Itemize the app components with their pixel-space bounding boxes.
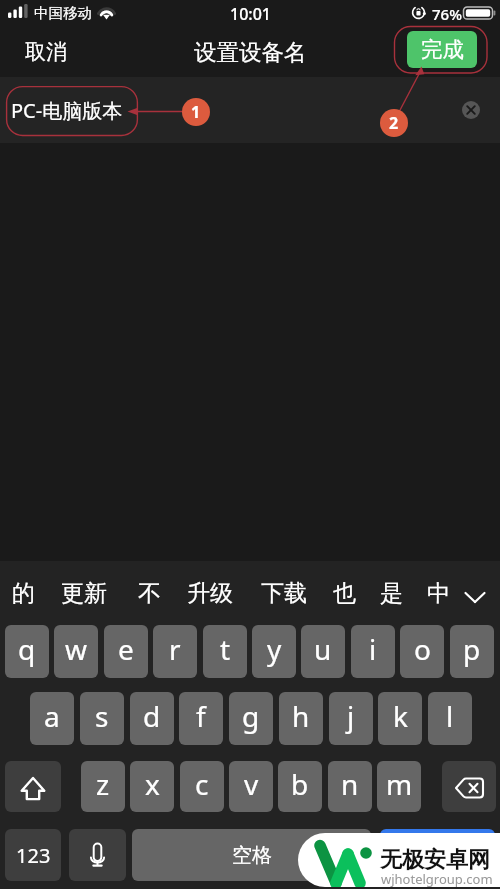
staticText: m (386, 765, 413, 803)
staticText: 空格 (232, 843, 272, 868)
button[interactable]: d (130, 692, 174, 745)
button[interactable]: 空格 (132, 829, 371, 881)
staticText: a (44, 697, 60, 735)
button[interactable]: f (179, 692, 223, 745)
button[interactable]: i (351, 625, 395, 678)
button[interactable]: 不 (138, 579, 161, 608)
button[interactable]: 升级 (187, 579, 233, 608)
button[interactable]: n (328, 761, 372, 812)
button[interactable]: 的 (12, 579, 35, 608)
button[interactable]: o (400, 625, 444, 678)
staticText: u (314, 630, 332, 668)
button[interactable]: Backspace (442, 761, 496, 812)
staticText: h (292, 697, 310, 735)
button[interactable]: x (130, 761, 174, 812)
button[interactable]: 更新 (61, 579, 107, 608)
button[interactable]: 123 (5, 829, 61, 881)
button[interactable]: z (81, 761, 125, 812)
staticText: i (369, 630, 377, 668)
staticText: PC-电脑版本 (11, 97, 123, 124)
staticText: 取消 (25, 39, 67, 65)
staticText: 更新 (61, 579, 107, 608)
staticText: y (267, 630, 282, 668)
button[interactable]: Shift (5, 761, 61, 812)
button[interactable]: k (378, 692, 422, 745)
button[interactable]: 取消 (25, 39, 67, 65)
staticText: 的 (12, 579, 35, 608)
button[interactable]: h (279, 692, 323, 745)
staticText: 2 (389, 112, 399, 134)
staticText: 中 (427, 579, 450, 608)
staticText: r (169, 630, 181, 668)
button[interactable]: v (229, 761, 273, 812)
button[interactable]: r (153, 625, 197, 678)
staticText: 完成 (421, 36, 464, 63)
staticText: c (195, 765, 209, 803)
staticText: d (143, 697, 161, 735)
staticText: 是 (380, 579, 403, 608)
staticText: g (242, 697, 260, 735)
staticText: 76% (432, 4, 462, 24)
button[interactable]: 中 (427, 579, 450, 608)
staticText: j (347, 697, 355, 735)
button[interactable]: q (5, 625, 49, 678)
staticText: n (341, 765, 359, 803)
staticText: 下载 (261, 579, 307, 608)
button[interactable]: 是 (380, 579, 403, 608)
staticText: o (414, 630, 431, 668)
button[interactable]: e (104, 625, 148, 678)
staticText: b (291, 765, 309, 803)
button[interactable]: y (252, 625, 296, 678)
staticText: 不 (138, 579, 161, 608)
staticText: l (446, 697, 454, 735)
staticText: 123 (16, 842, 51, 869)
staticText: 中国移动 (34, 4, 92, 22)
staticText: k (393, 697, 408, 735)
button[interactable]: c (180, 761, 224, 812)
button[interactable]: g (229, 692, 273, 745)
button[interactable]: 完成 (407, 31, 477, 68)
button[interactable]: 下载 (261, 579, 307, 608)
button[interactable]: p (450, 625, 494, 678)
button[interactable]: Clear (462, 101, 480, 119)
button[interactable]: 也 (333, 579, 356, 608)
staticText: w (65, 630, 88, 668)
staticText: 无极安卓网 (380, 846, 490, 874)
button[interactable]: Enter (380, 829, 495, 881)
staticText: z (96, 765, 110, 803)
button[interactable]: Voice input (69, 829, 126, 881)
staticText: 10:01 (230, 3, 271, 25)
staticText: 升级 (187, 579, 233, 608)
button[interactable]: w (54, 625, 98, 678)
staticText: x (145, 765, 160, 803)
button[interactable]: j (329, 692, 373, 745)
staticText: 设置设备名 (194, 38, 307, 66)
button[interactable]: u (301, 625, 345, 678)
button[interactable]: a (30, 692, 74, 745)
staticText: s (95, 697, 109, 735)
staticText: 也 (333, 579, 356, 608)
staticText: v (244, 765, 259, 803)
staticText: t (220, 630, 231, 668)
button[interactable]: s (80, 692, 124, 745)
button[interactable]: m (377, 761, 421, 812)
button[interactable]: b (278, 761, 322, 812)
staticText: 1 (191, 101, 201, 123)
staticText: wjhotelgroup.com (381, 870, 493, 887)
staticText: q (18, 630, 36, 668)
staticText: e (118, 630, 134, 668)
staticText: f (196, 697, 206, 735)
staticText: p (463, 630, 481, 668)
button[interactable]: l (428, 692, 472, 745)
button[interactable]: Expand candidates (463, 585, 487, 609)
button[interactable]: t (203, 625, 247, 678)
